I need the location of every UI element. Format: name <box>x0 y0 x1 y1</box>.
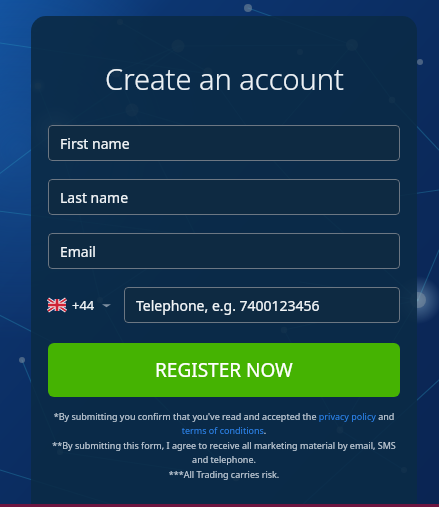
button[interactable]: First name <box>48 125 400 161</box>
staticText: +44 <box>72 296 95 314</box>
button[interactable]: Last name <box>48 179 400 215</box>
staticText: Create an account <box>105 59 344 98</box>
button[interactable]: Telephone, e.g. 7400123456 <box>124 287 400 323</box>
staticText: *By submitting you confirm that you've r… <box>48 410 400 437</box>
staticText: ***All Trading carries risk. <box>48 468 400 480</box>
other: United Kingdom <box>48 299 66 311</box>
button[interactable]: REGISTER NOW <box>48 343 400 397</box>
staticText: Email <box>60 242 96 261</box>
staticText: **By submitting this form, I agree to re… <box>48 439 400 466</box>
staticText: First name <box>60 134 130 153</box>
staticText: Telephone, e.g. 7400123456 <box>136 296 320 315</box>
button[interactable]: Select country code <box>48 287 124 323</box>
staticText: REGISTER NOW <box>155 357 293 383</box>
button[interactable]: *By submitting you confirm that you've r… <box>48 410 400 437</box>
button[interactable]: Email <box>48 233 400 269</box>
staticText: Last name <box>60 188 129 207</box>
